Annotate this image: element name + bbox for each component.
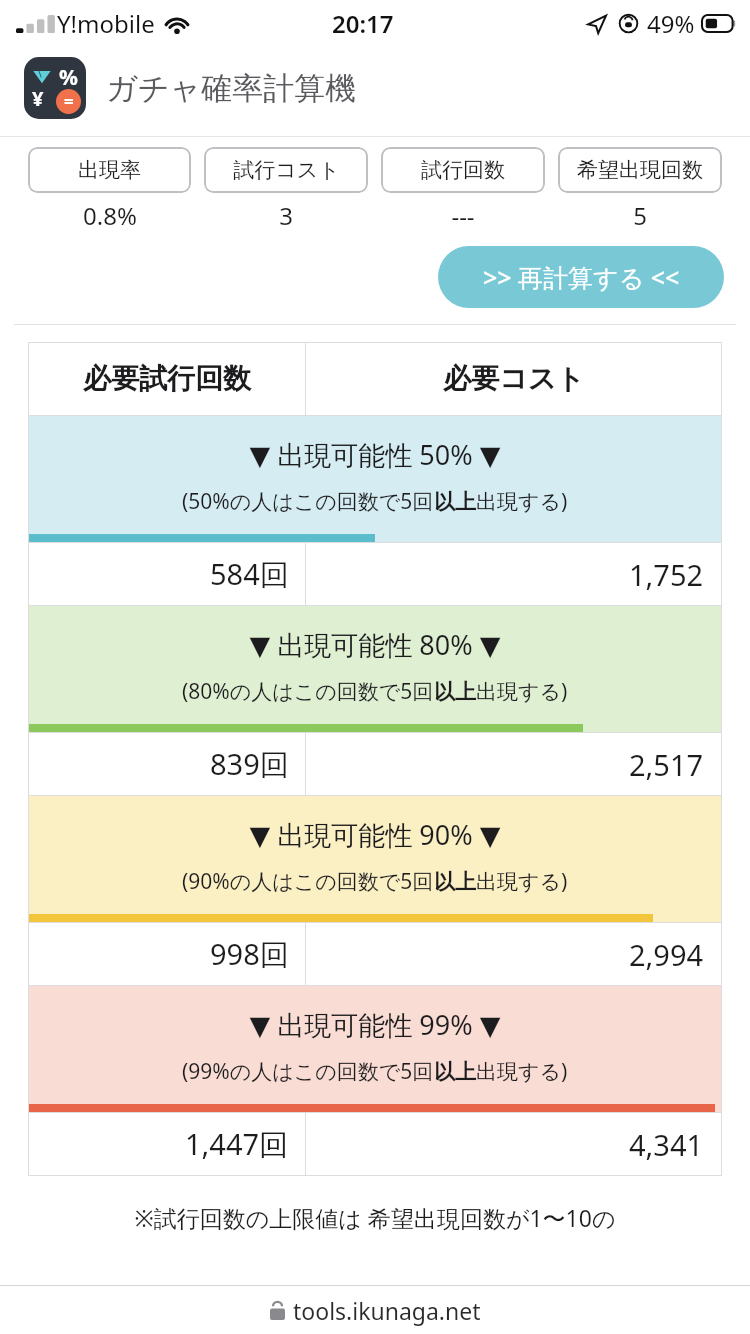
- staticText: (99%の人はこの回数で5回: [182, 1057, 434, 1086]
- staticText: (90%の人はこの回数で5回: [182, 867, 434, 896]
- staticText: 1,447回: [185, 1124, 289, 1164]
- staticText: 出現する): [476, 677, 568, 706]
- staticText: 試行回数: [421, 157, 505, 183]
- staticText: 4,341: [629, 1125, 704, 1164]
- staticText: 出現する): [476, 487, 568, 516]
- button[interactable]: 出現率: [28, 147, 191, 193]
- staticText: ▼ 出現可能性 50% ▼: [28, 436, 722, 473]
- staticText: 2,994: [629, 935, 704, 974]
- staticText: %: [59, 63, 78, 92]
- staticText: tools.ikunaga.net: [293, 1295, 481, 1326]
- staticText: ---: [451, 199, 475, 232]
- button[interactable]: >> 再計算する <<: [438, 246, 724, 308]
- staticText: (50%の人はこの回数で5回: [182, 487, 434, 516]
- staticText: 584回: [210, 554, 289, 594]
- staticText: =: [64, 90, 74, 113]
- staticText: 必要コスト: [443, 361, 585, 396]
- staticText: ※試行回数の上限値は 希望出現回数が1〜10の: [0, 1202, 750, 1233]
- staticText: 出現する): [476, 1057, 568, 1086]
- staticText: 998回: [210, 934, 289, 974]
- staticText: 1,752: [629, 555, 704, 594]
- button[interactable]: 希望出現回数: [558, 147, 722, 193]
- staticText: 20:17: [332, 7, 394, 40]
- staticText: 0.8%: [83, 199, 137, 232]
- staticText: 試行コスト: [233, 157, 340, 183]
- staticText: 以上: [434, 489, 476, 515]
- staticText: ▼ 出現可能性 99% ▼: [28, 1006, 722, 1043]
- staticText: 2,517: [629, 745, 704, 784]
- staticText: ガチャ確率計算機: [106, 69, 357, 108]
- staticText: 839回: [210, 744, 289, 784]
- staticText: >> 再計算する <<: [483, 260, 680, 294]
- staticText: ▼ 出現可能性 80% ▼: [28, 626, 722, 663]
- button[interactable]: 試行回数: [381, 147, 545, 193]
- staticText: 3: [279, 199, 293, 232]
- staticText: ¥: [32, 85, 44, 112]
- staticText: 出現する): [476, 867, 568, 896]
- staticText: 以上: [434, 1059, 476, 1085]
- staticText: 希望出現回数: [577, 157, 703, 183]
- button[interactable]: 試行コスト: [204, 147, 368, 193]
- staticText: 5: [633, 199, 647, 232]
- staticText: ▼ 出現可能性 90% ▼: [28, 816, 722, 853]
- staticText: (80%の人はこの回数で5回: [182, 677, 434, 706]
- staticText: 以上: [434, 679, 476, 705]
- staticText: Y!mobile: [57, 7, 155, 40]
- staticText: 49%: [647, 7, 695, 40]
- staticText: 以上: [434, 869, 476, 895]
- staticText: 出現率: [78, 157, 141, 183]
- staticText: 必要試行回数: [83, 361, 251, 396]
